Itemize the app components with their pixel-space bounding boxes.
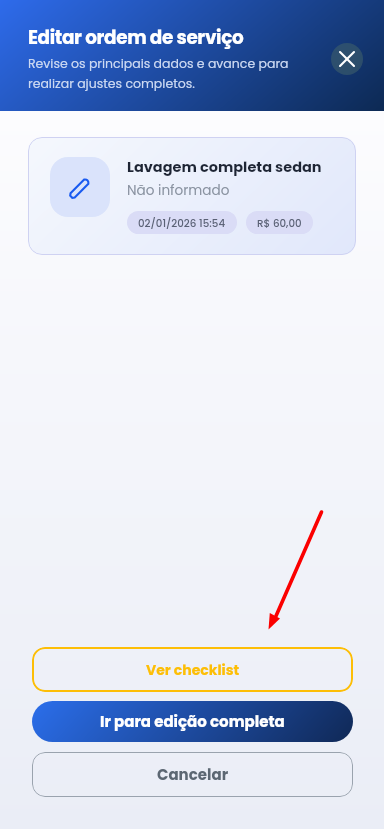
staticText: Ir para edição completa — [100, 711, 285, 732]
staticText: Cancelar — [157, 764, 229, 785]
staticText: R$ 60,00 — [257, 216, 302, 230]
staticText: Revise os principais dados e avance para… — [28, 55, 289, 92]
button[interactable]: Fechar — [331, 43, 363, 75]
staticText: 02/01/2026 15:54 — [138, 216, 226, 230]
button[interactable]: Cancelar — [32, 752, 353, 797]
staticText: Lavagem completa sedan — [127, 157, 322, 177]
button[interactable]: Ver checklist — [32, 647, 353, 692]
button[interactable]: Lavagem completa sedan — [28, 137, 356, 255]
staticText: Ver checklist — [146, 660, 240, 680]
button[interactable]: Ir para edição completa — [32, 701, 353, 742]
staticText: Editar ordem de serviço — [28, 25, 244, 51]
staticText: Não informado — [127, 181, 230, 200]
